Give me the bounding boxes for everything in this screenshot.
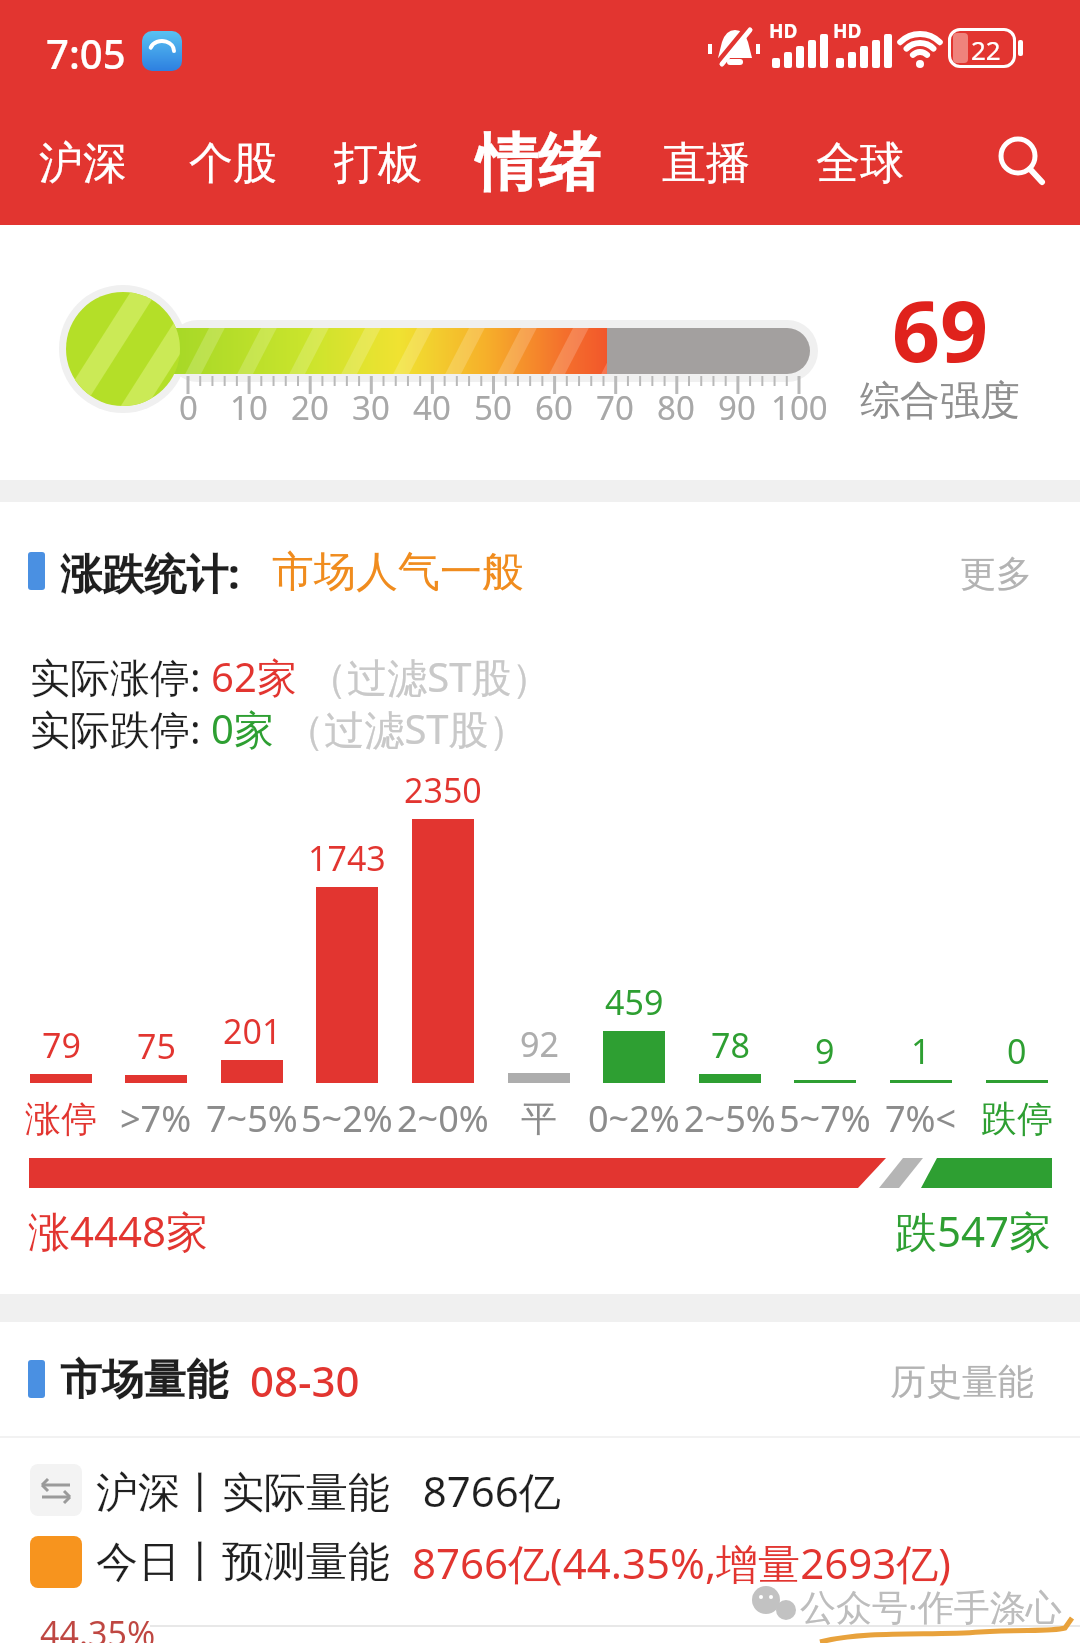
- staticText: 2350: [404, 767, 482, 813]
- staticText: 90: [718, 385, 756, 425]
- button[interactable]: 沪深: [35, 125, 131, 201]
- staticText: 2~0%: [397, 1094, 489, 1143]
- staticText: 沪深: [39, 136, 127, 191]
- staticText: 201: [223, 1008, 282, 1054]
- staticText: 今日丨预测量能: [96, 1536, 390, 1589]
- button[interactable]: 情绪: [472, 118, 604, 208]
- staticText: 20: [291, 385, 329, 425]
- staticText: 50: [474, 385, 512, 425]
- staticText: 0: [179, 385, 198, 425]
- staticText: 44.35%: [40, 1610, 156, 1643]
- staticText: 平: [521, 1096, 557, 1141]
- staticText: 5~7%: [779, 1094, 871, 1143]
- staticText: 08-30: [250, 1352, 360, 1409]
- staticText: 7:05: [46, 26, 126, 76]
- staticText: 7%<: [885, 1094, 957, 1143]
- staticText: 跌停: [981, 1096, 1053, 1141]
- button[interactable]: [990, 130, 1056, 196]
- staticText: 70: [596, 385, 634, 425]
- staticText: >7%: [120, 1094, 192, 1143]
- staticText: 全球: [816, 136, 904, 191]
- button[interactable]: 全球: [812, 125, 908, 201]
- staticText: 0: [1007, 1028, 1027, 1074]
- staticText: 10: [230, 385, 268, 425]
- staticText: 市场量能: [60, 1354, 228, 1407]
- staticText: 100: [771, 385, 828, 425]
- staticText: 5~2%: [301, 1094, 393, 1143]
- staticText: 8766亿(44.35%,增量2693亿): [412, 1534, 951, 1590]
- staticText: 79: [42, 1022, 81, 1068]
- button[interactable]: 今日丨预测量能: [0, 1532, 1080, 1592]
- staticText: 22: [971, 32, 1001, 64]
- button[interactable]: 沪深丨实际量能 8766亿: [0, 1460, 1080, 1520]
- button[interactable]: 市场量能: [0, 1342, 1080, 1418]
- staticText: 1: [911, 1028, 931, 1074]
- staticText: 60: [535, 385, 573, 425]
- staticText: 0~2%: [588, 1094, 680, 1143]
- staticText: 历史量能: [890, 1359, 1034, 1404]
- staticText: 个股: [189, 136, 277, 191]
- staticText: 459: [605, 979, 664, 1025]
- staticText: 30: [352, 385, 390, 425]
- staticText: 7~5%: [206, 1094, 298, 1143]
- staticText: HD: [769, 18, 798, 40]
- staticText: 涨4448家: [28, 1202, 209, 1258]
- staticText: 打板: [334, 136, 422, 191]
- staticText: 80: [657, 385, 695, 425]
- button[interactable]: 打板: [330, 125, 426, 201]
- staticText: 跌547家: [895, 1202, 1052, 1258]
- staticText: 9: [815, 1028, 835, 1074]
- staticText: 78: [711, 1022, 750, 1068]
- staticText: 2~5%: [684, 1094, 776, 1143]
- button[interactable]: 涨跌统计:: [0, 532, 1080, 612]
- staticText: 1743: [308, 835, 386, 881]
- staticText: 75: [137, 1023, 176, 1069]
- button[interactable]: 个股: [185, 125, 281, 201]
- staticText: 直播: [662, 136, 750, 191]
- staticText: 公众号·作手涤心: [800, 1582, 1062, 1626]
- staticText: 情绪: [476, 124, 600, 202]
- staticText: 市场人气一般: [272, 546, 524, 599]
- staticText: 涨跌统计:: [60, 544, 240, 601]
- staticText: 实际跌停: 0家 （过滤ST股）: [30, 701, 529, 753]
- button[interactable]: 直播: [658, 125, 754, 201]
- staticText: 涨停: [25, 1096, 97, 1141]
- staticText: 更多: [960, 551, 1032, 596]
- staticText: 40: [413, 385, 451, 425]
- staticText: 92: [520, 1021, 559, 1067]
- staticText: 实际涨停: 62家 （过滤ST股）: [30, 649, 552, 701]
- staticText: HD: [833, 18, 862, 40]
- staticText: 综合强度: [860, 375, 1020, 421]
- staticText: 沪深丨实际量能 8766亿: [96, 1462, 561, 1518]
- staticText: 69: [892, 272, 989, 372]
